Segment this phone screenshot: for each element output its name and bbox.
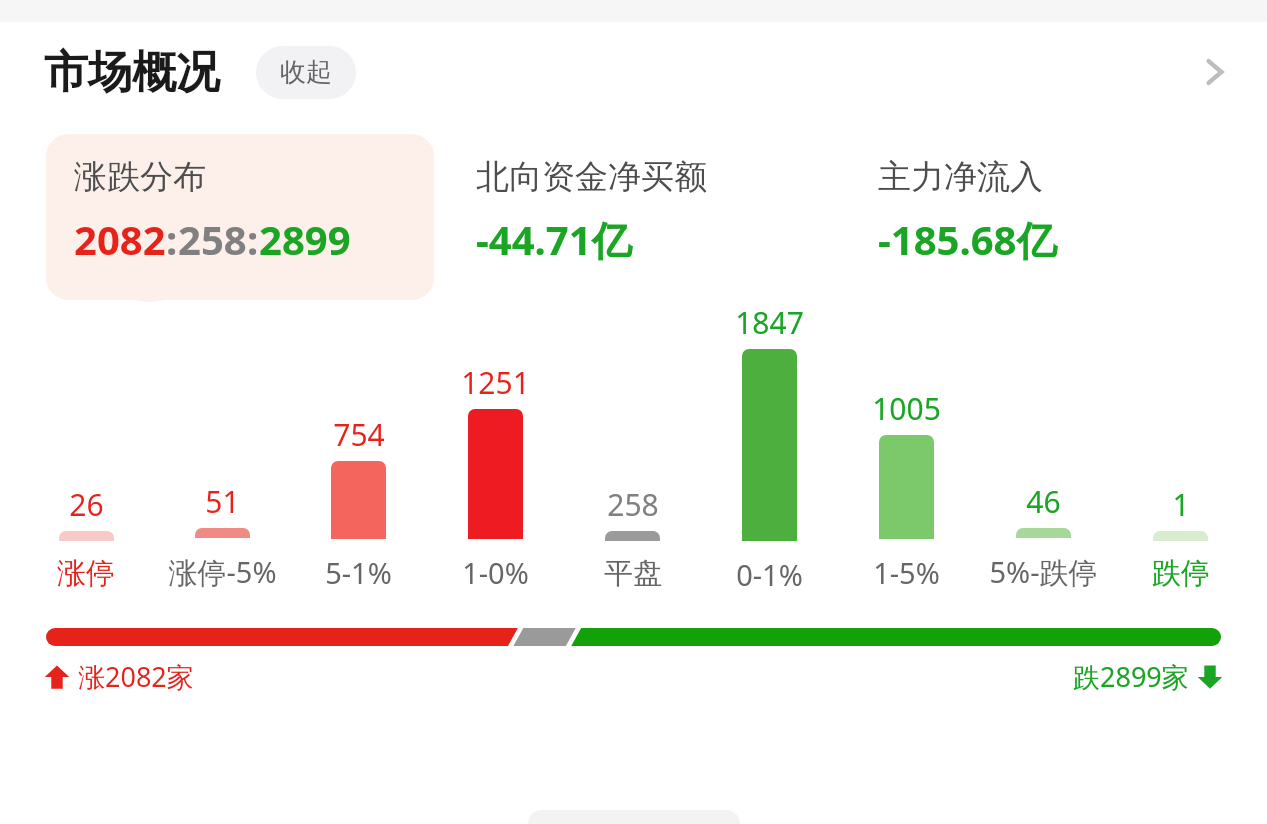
- staticText: 平盘: [604, 555, 662, 592]
- button[interactable]: 1847: [701, 302, 838, 592]
- staticText: 主力净流入: [878, 156, 1043, 198]
- staticText: 1-0%: [462, 553, 529, 592]
- button[interactable]: 258: [564, 484, 701, 592]
- staticText: -44.71亿: [476, 212, 632, 267]
- staticText: 跌停: [1152, 555, 1210, 592]
- staticText: 754: [333, 414, 385, 455]
- button[interactable]: 1005: [838, 388, 975, 592]
- staticText: 258: [607, 484, 659, 525]
- staticText: 1-5%: [873, 553, 940, 592]
- button[interactable]: 涨跌分布: [46, 134, 434, 300]
- staticText: -185.68亿: [878, 212, 1057, 267]
- staticText: :: [247, 212, 259, 266]
- staticText: 跌2899家: [1073, 658, 1189, 695]
- staticText: 1847: [735, 302, 804, 343]
- staticText: 5%-跌停: [989, 552, 1098, 592]
- staticText: :: [166, 212, 178, 266]
- button[interactable]: 收起: [256, 46, 356, 99]
- staticText: 2899: [259, 212, 351, 266]
- staticText: 1: [1172, 484, 1190, 525]
- staticText: 涨跌分布: [74, 156, 206, 198]
- staticText: 北向资金净买额: [476, 156, 707, 198]
- staticText: 涨2082家: [78, 658, 194, 695]
- staticText: 26: [69, 484, 104, 525]
- staticText: 46: [1026, 481, 1061, 522]
- staticText: 5-1%: [325, 553, 392, 592]
- staticText: 2082: [74, 212, 166, 266]
- button[interactable]: 主力净流入: [850, 134, 1238, 300]
- staticText: 258: [178, 212, 247, 266]
- button[interactable]: 46: [975, 481, 1112, 592]
- staticText: 涨停-5%: [168, 552, 277, 592]
- staticText: 市场概况: [44, 45, 220, 100]
- button[interactable]: 754: [290, 414, 427, 592]
- button[interactable]: 51: [154, 481, 290, 592]
- staticText: 51: [205, 481, 240, 522]
- staticText: 0-1%: [736, 555, 803, 592]
- button[interactable]: More: [1189, 46, 1241, 98]
- staticText: 收起: [280, 56, 332, 89]
- button[interactable]: 1: [1112, 484, 1249, 592]
- staticText: 1251: [461, 362, 530, 403]
- button[interactable]: 1251: [427, 362, 564, 592]
- staticText: 涨停: [57, 555, 115, 592]
- staticText: 1005: [872, 388, 941, 429]
- button[interactable]: 26: [18, 484, 154, 592]
- button[interactable]: 北向资金净买额: [448, 134, 836, 300]
